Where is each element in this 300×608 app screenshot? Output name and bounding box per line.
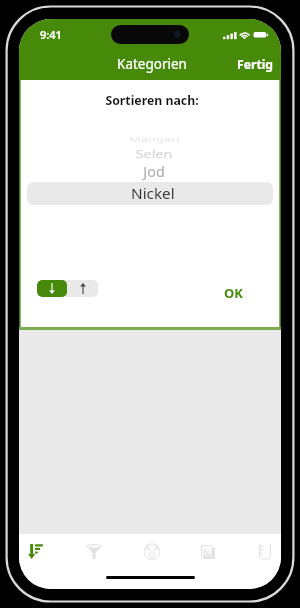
staticText: 9:41 (40, 27, 62, 42)
button[interactable]: OK (214, 283, 252, 302)
button[interactable]: Elemente (199, 543, 216, 560)
staticText: Kategorien (21, 55, 281, 73)
button[interactable]: Aufsteigend sortieren (67, 280, 98, 297)
staticText: Sortieren nach: (21, 92, 281, 109)
button[interactable]: Nickel (27, 182, 273, 205)
button[interactable]: Filter (85, 543, 102, 560)
staticText: Na (203, 547, 214, 558)
button[interactable]: Fertig (225, 54, 274, 74)
staticText: OK (224, 284, 243, 302)
staticText: Kalium (19, 130, 281, 131)
button[interactable]: Sortieren (27, 543, 44, 560)
button[interactable]: Labor (256, 543, 273, 560)
staticText: Nickel (131, 183, 175, 204)
button[interactable]: Tiere (143, 543, 160, 560)
staticText: Mangan (23, 134, 281, 144)
button[interactable]: Absteigend sortieren (37, 280, 67, 297)
staticText: Selen (23, 146, 281, 161)
staticText: Jod (23, 162, 281, 181)
staticText: Fertig (237, 56, 274, 73)
